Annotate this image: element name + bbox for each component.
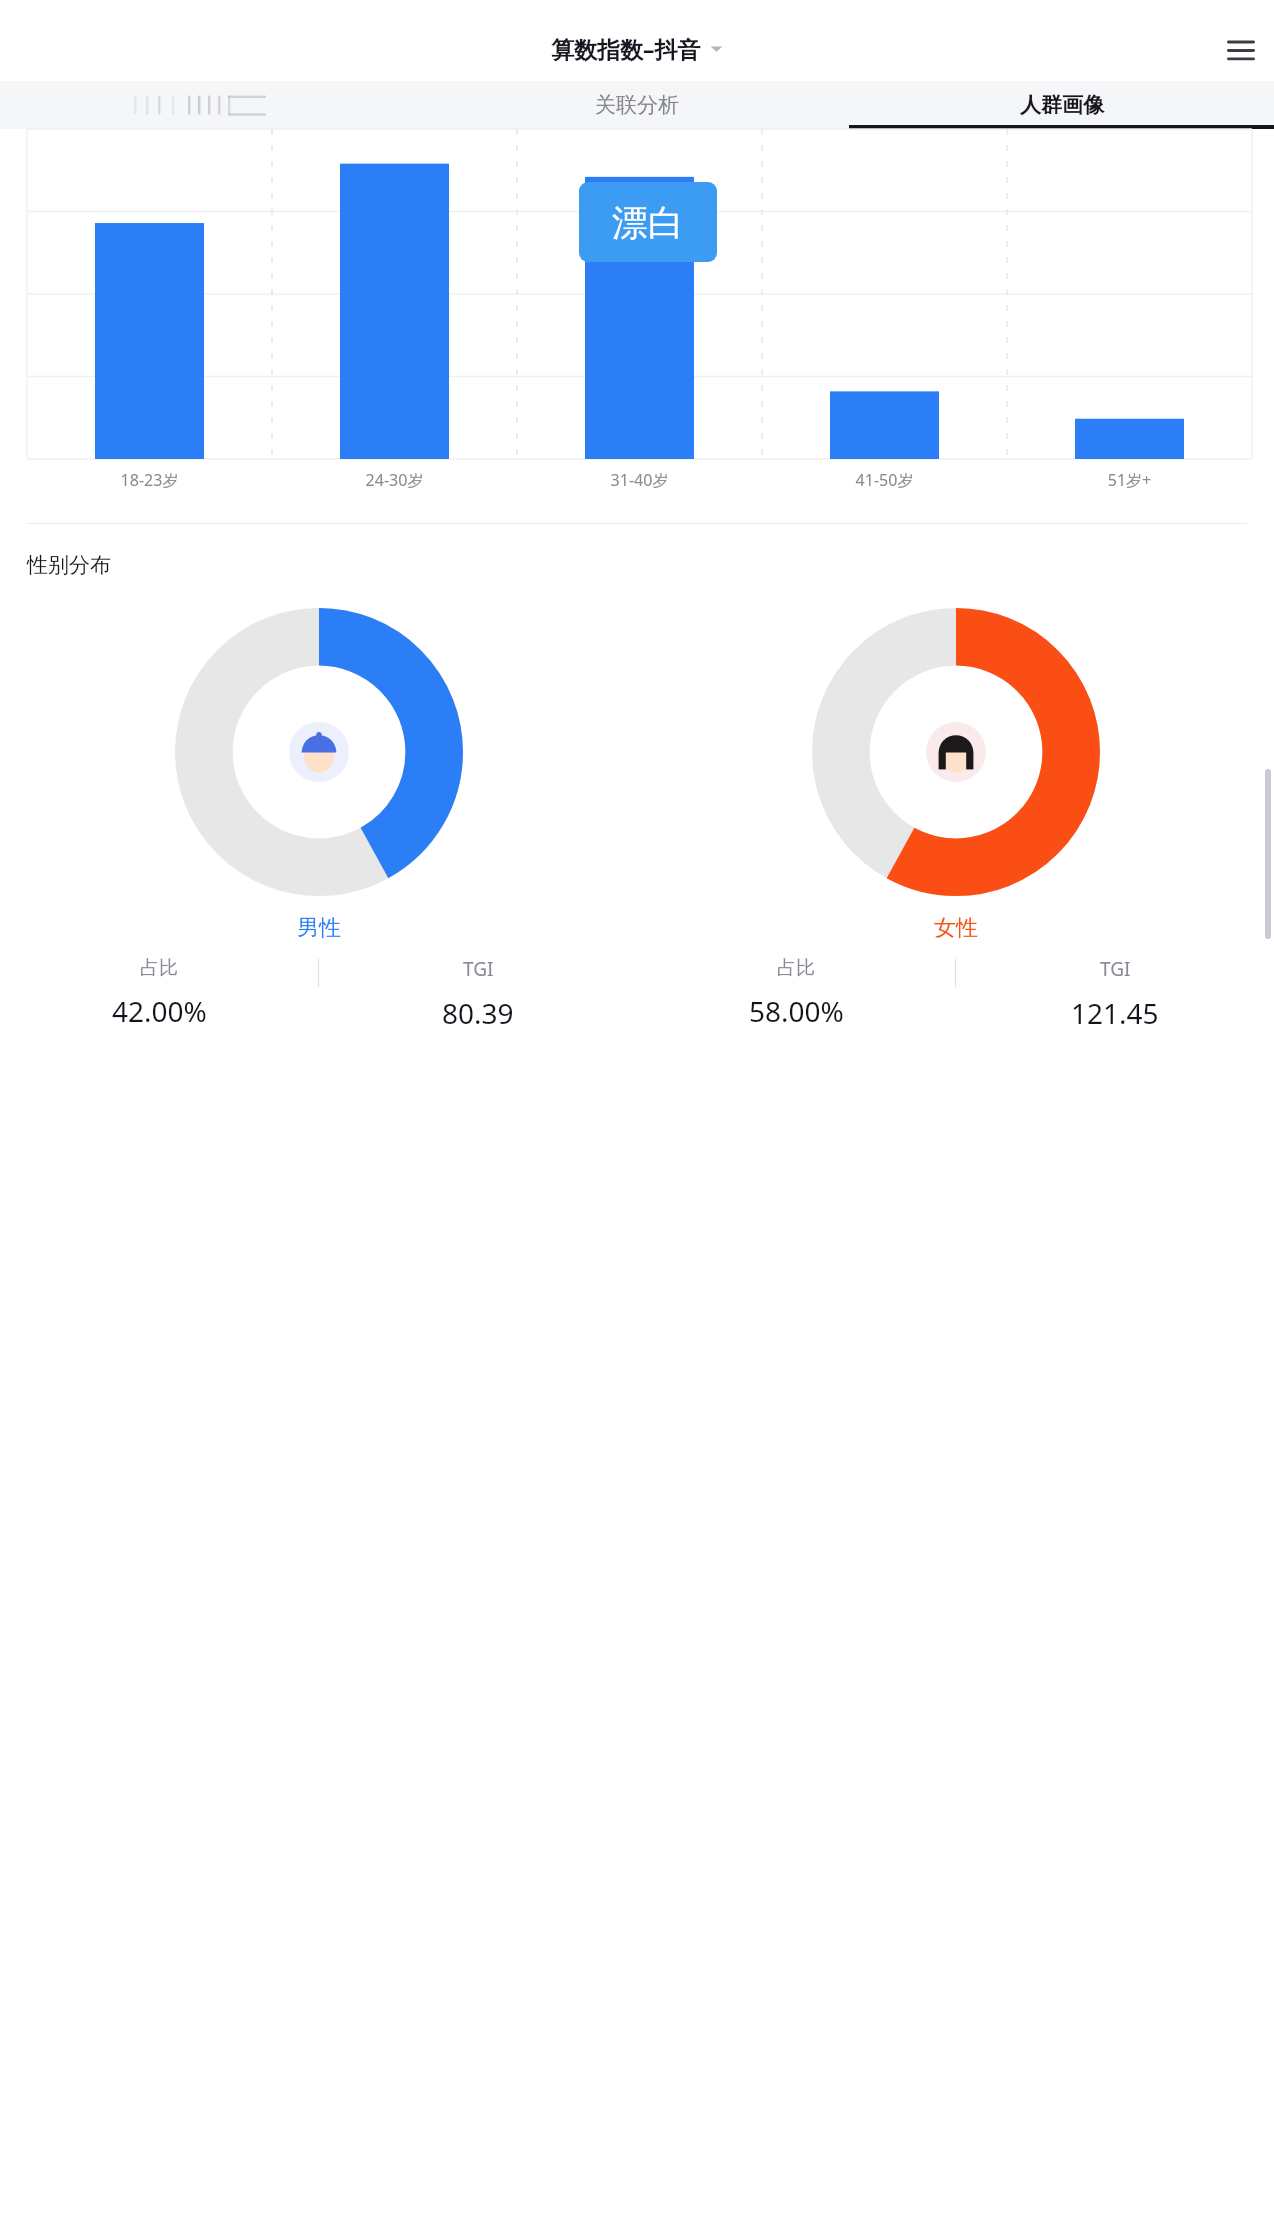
staticText: 占比 [140,956,178,980]
staticText: 算数指数–抖音 [551,33,701,64]
staticText: 男性 [297,914,341,942]
staticText: 女性 [934,914,978,942]
button[interactable] [0,81,424,129]
staticText: 关联分析 [595,92,679,118]
staticText: 占比 [777,956,815,980]
staticText: TGI [1100,956,1131,982]
staticText: 41-50岁 [762,469,1007,491]
staticText: 24-30岁 [272,469,517,491]
button[interactable]: 关联分析 [424,81,849,129]
staticText: 31-40岁 [517,469,762,491]
staticText: 18-23岁 [27,469,272,491]
staticText: 80.39 [442,994,514,1032]
staticText: 51岁+ [1007,469,1252,491]
staticText: 漂白 [612,200,684,245]
staticText: 人群画像 [1020,92,1104,118]
staticText: 58.00% [749,992,844,1030]
staticText: TGI [463,956,494,982]
button[interactable]: 人群画像 [849,81,1274,129]
button[interactable]: Menu [1218,26,1264,72]
staticText: 42.00% [112,992,207,1030]
staticText: 性别分布 [27,552,111,578]
staticText: 121.45 [1071,994,1159,1032]
